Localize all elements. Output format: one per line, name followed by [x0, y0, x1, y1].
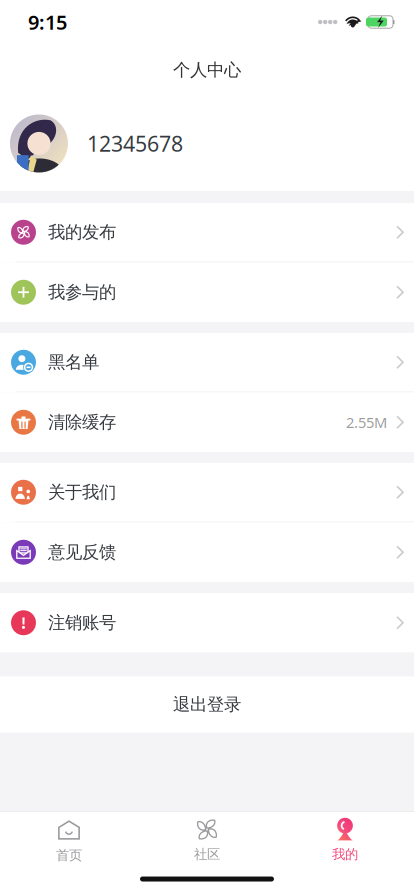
button[interactable]: 我参与的 [0, 262, 414, 322]
button[interactable]: 注销账号 [0, 593, 414, 652]
staticText: 我参与的 [48, 282, 116, 303]
button[interactable]: 清除缓存 [0, 392, 414, 452]
button[interactable]: 首页 [0, 812, 138, 862]
button[interactable]: 黑名单 [0, 333, 414, 392]
staticText: 我的 [332, 846, 358, 862]
staticText: 黑名单 [48, 352, 99, 373]
staticText: 12345678 [87, 129, 183, 158]
button[interactable]: 关于我们 [0, 463, 414, 522]
staticText: 个人中心 [173, 59, 241, 81]
button[interactable]: 我的 [276, 812, 414, 862]
staticText: 9:15 [28, 9, 67, 35]
staticText: 首页 [56, 847, 82, 863]
staticText: 意见反馈 [48, 542, 116, 563]
staticText: 我的发布 [48, 222, 116, 243]
staticText: 注销账号 [48, 612, 116, 633]
button[interactable]: 退出登录 [0, 676, 414, 732]
staticText: 退出登录 [173, 694, 241, 715]
staticText: 关于我们 [48, 482, 116, 503]
staticText: 社区 [194, 846, 220, 862]
button[interactable]: 12345678 [0, 96, 414, 191]
staticText: 清除缓存 [48, 412, 116, 433]
button[interactable]: 意见反馈 [0, 522, 414, 582]
button[interactable]: 社区 [138, 812, 276, 862]
button[interactable]: 我的发布 [0, 203, 414, 262]
staticText: 2.55M [346, 412, 387, 432]
